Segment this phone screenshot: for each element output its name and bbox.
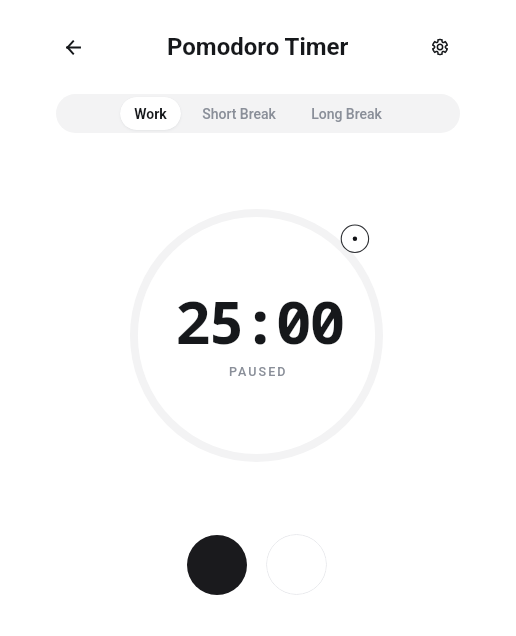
staticText: Pomodoro Timer — [167, 33, 349, 61]
staticText: Long Break — [311, 106, 382, 122]
staticText: Work — [134, 106, 167, 122]
button[interactable]: Reset timer — [266, 534, 327, 595]
button[interactable]: Work — [120, 97, 181, 130]
button[interactable]: Start timer — [187, 535, 247, 595]
staticText: Short Break — [202, 106, 276, 122]
button[interactable]: Settings — [418, 25, 462, 69]
button[interactable]: Long Break — [297, 97, 396, 130]
button[interactable]: Short Break — [188, 97, 290, 130]
staticText: 25:00 — [175, 280, 343, 362]
staticText: PAUSED — [229, 364, 288, 379]
button[interactable]: Back — [50, 24, 96, 70]
